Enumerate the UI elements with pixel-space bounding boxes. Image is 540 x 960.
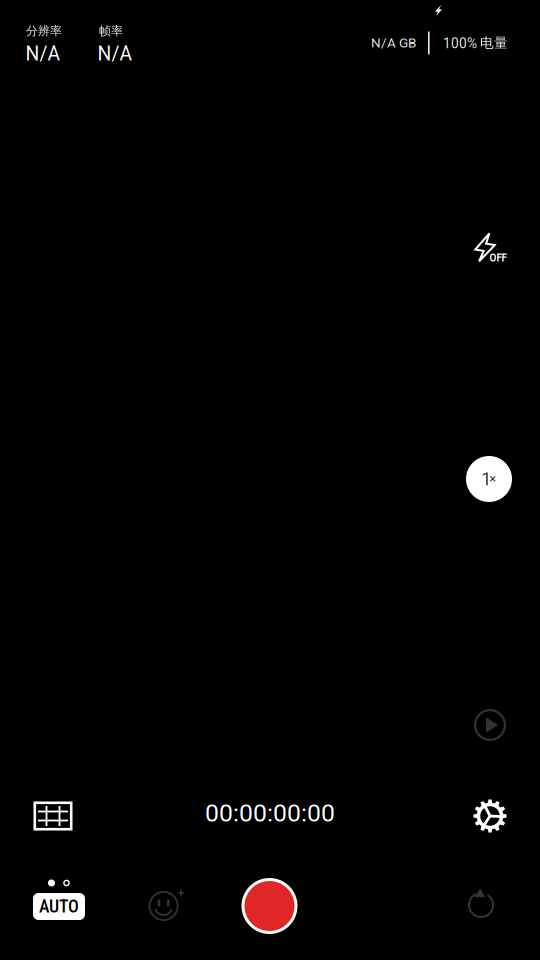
staticText: N/A GB xyxy=(371,35,416,51)
staticText: 100% 电量 xyxy=(443,34,508,52)
staticText: 1 xyxy=(481,468,491,490)
staticText: N/A xyxy=(25,43,60,65)
staticText: N/A xyxy=(97,43,132,65)
staticText: OFF xyxy=(489,252,506,264)
button[interactable]: Start recording xyxy=(240,877,298,935)
button[interactable]: Grid overlay xyxy=(27,792,79,840)
button[interactable]: Switch camera xyxy=(457,881,505,929)
button[interactable]: Beauty effects xyxy=(142,884,186,928)
button[interactable]: Review last clip xyxy=(466,701,514,749)
staticText: 帧率 xyxy=(99,23,123,38)
staticText: AUTO xyxy=(39,896,79,917)
button[interactable]: Zoom level 1x xyxy=(466,456,512,502)
button[interactable]: Flash off xyxy=(472,231,516,271)
button[interactable]: AUTO xyxy=(33,893,85,920)
staticText: × xyxy=(489,471,496,486)
staticText: 00:00:00:00 xyxy=(205,798,335,828)
button[interactable]: Settings xyxy=(466,792,514,840)
staticText: 分辨率 xyxy=(26,23,62,38)
